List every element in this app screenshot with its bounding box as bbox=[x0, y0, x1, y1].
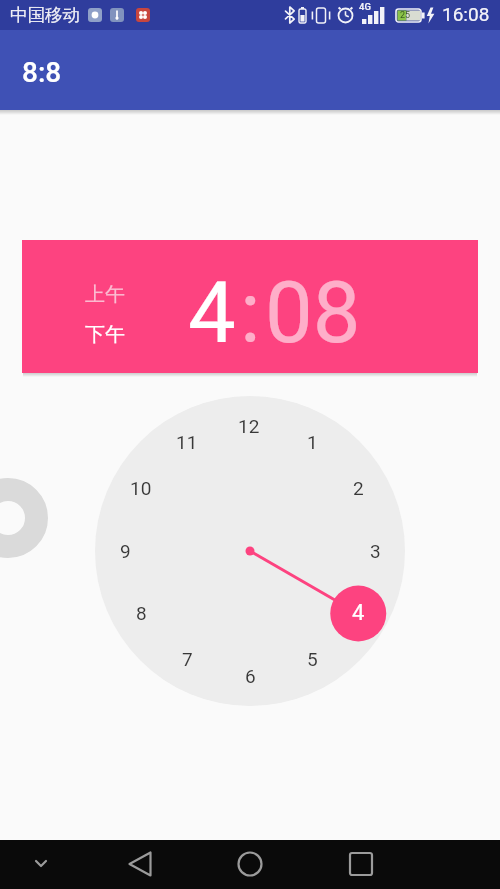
staticText: 1 bbox=[307, 431, 318, 453]
staticText: 16:08 bbox=[442, 3, 490, 25]
staticText: 8:8 bbox=[22, 56, 62, 89]
staticText: 8 bbox=[136, 602, 147, 624]
staticText: 25 bbox=[400, 10, 411, 21]
staticText: 下午 bbox=[85, 322, 125, 347]
button[interactable] bbox=[333, 840, 500, 889]
staticText: 4 bbox=[352, 600, 365, 626]
staticText: 2 bbox=[353, 477, 364, 499]
staticText: 5 bbox=[307, 648, 318, 670]
staticText: 4G bbox=[359, 1, 371, 12]
button[interactable] bbox=[166, 840, 333, 889]
staticText: 6 bbox=[245, 665, 256, 687]
staticText: 9 bbox=[120, 540, 131, 562]
staticText: : bbox=[240, 263, 261, 363]
staticText: 上午 bbox=[85, 282, 125, 307]
staticText: 3 bbox=[370, 540, 381, 562]
button[interactable]: 上午 bbox=[22, 240, 478, 373]
staticText: 4 bbox=[188, 263, 236, 363]
staticText: 12 bbox=[238, 415, 260, 437]
button[interactable] bbox=[95, 396, 405, 706]
button[interactable] bbox=[0, 840, 166, 889]
staticText: 10 bbox=[130, 477, 152, 499]
staticText: 08 bbox=[265, 263, 361, 363]
staticText: 7 bbox=[182, 648, 193, 670]
staticText: 中国移动 bbox=[10, 4, 80, 26]
staticText: 11 bbox=[176, 431, 198, 453]
